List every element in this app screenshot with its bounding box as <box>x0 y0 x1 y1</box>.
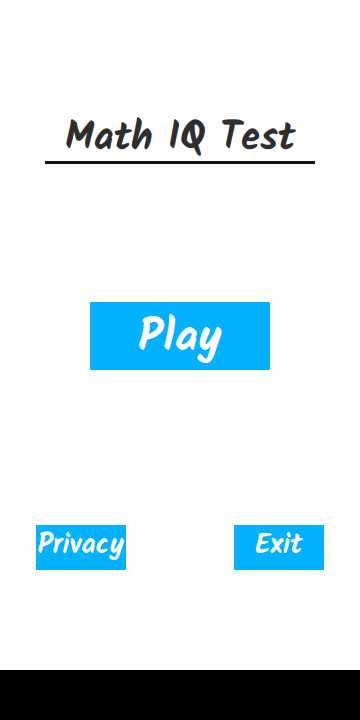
staticText: Play <box>138 303 222 375</box>
staticText: Math IQ Test <box>65 108 295 170</box>
button[interactable]: Exit <box>234 525 324 570</box>
button[interactable]: Play <box>90 302 270 370</box>
staticText: Privacy <box>37 523 124 568</box>
staticText: Exit <box>255 523 303 568</box>
button[interactable]: Privacy <box>36 525 126 570</box>
